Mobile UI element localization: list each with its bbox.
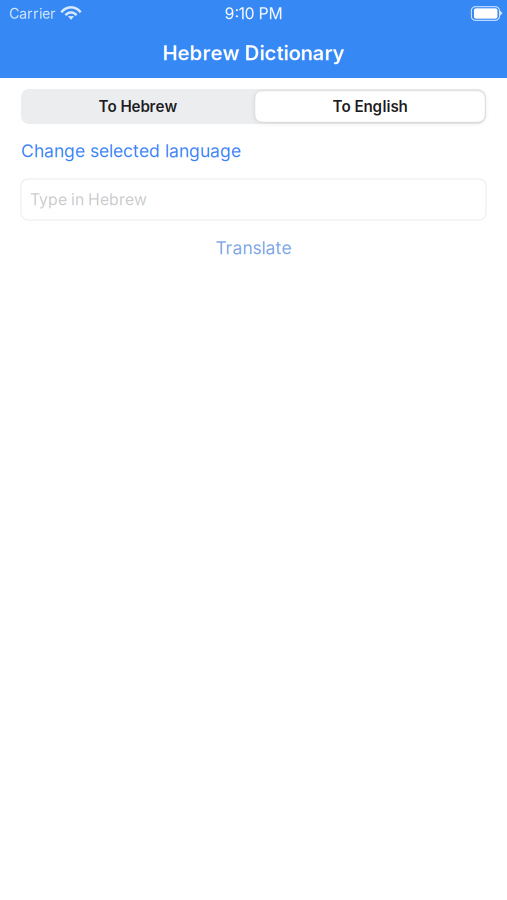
button[interactable]: Type in Hebrew	[21, 179, 486, 220]
button[interactable]: Change selected language	[21, 139, 241, 163]
button[interactable]: Translate	[21, 235, 486, 261]
button[interactable]: To Hebrew	[21, 89, 255, 124]
staticText: To English	[332, 97, 407, 116]
staticText: Translate	[215, 237, 291, 258]
button[interactable]: To English	[255, 91, 486, 122]
staticText: Hebrew Dictionary	[162, 41, 344, 65]
staticText: 9:10 PM	[224, 4, 282, 23]
staticText: Change selected language	[21, 140, 241, 161]
staticText: Type in Hebrew	[30, 190, 147, 209]
staticText: Carrier	[9, 5, 55, 22]
staticText: To Hebrew	[98, 97, 177, 116]
